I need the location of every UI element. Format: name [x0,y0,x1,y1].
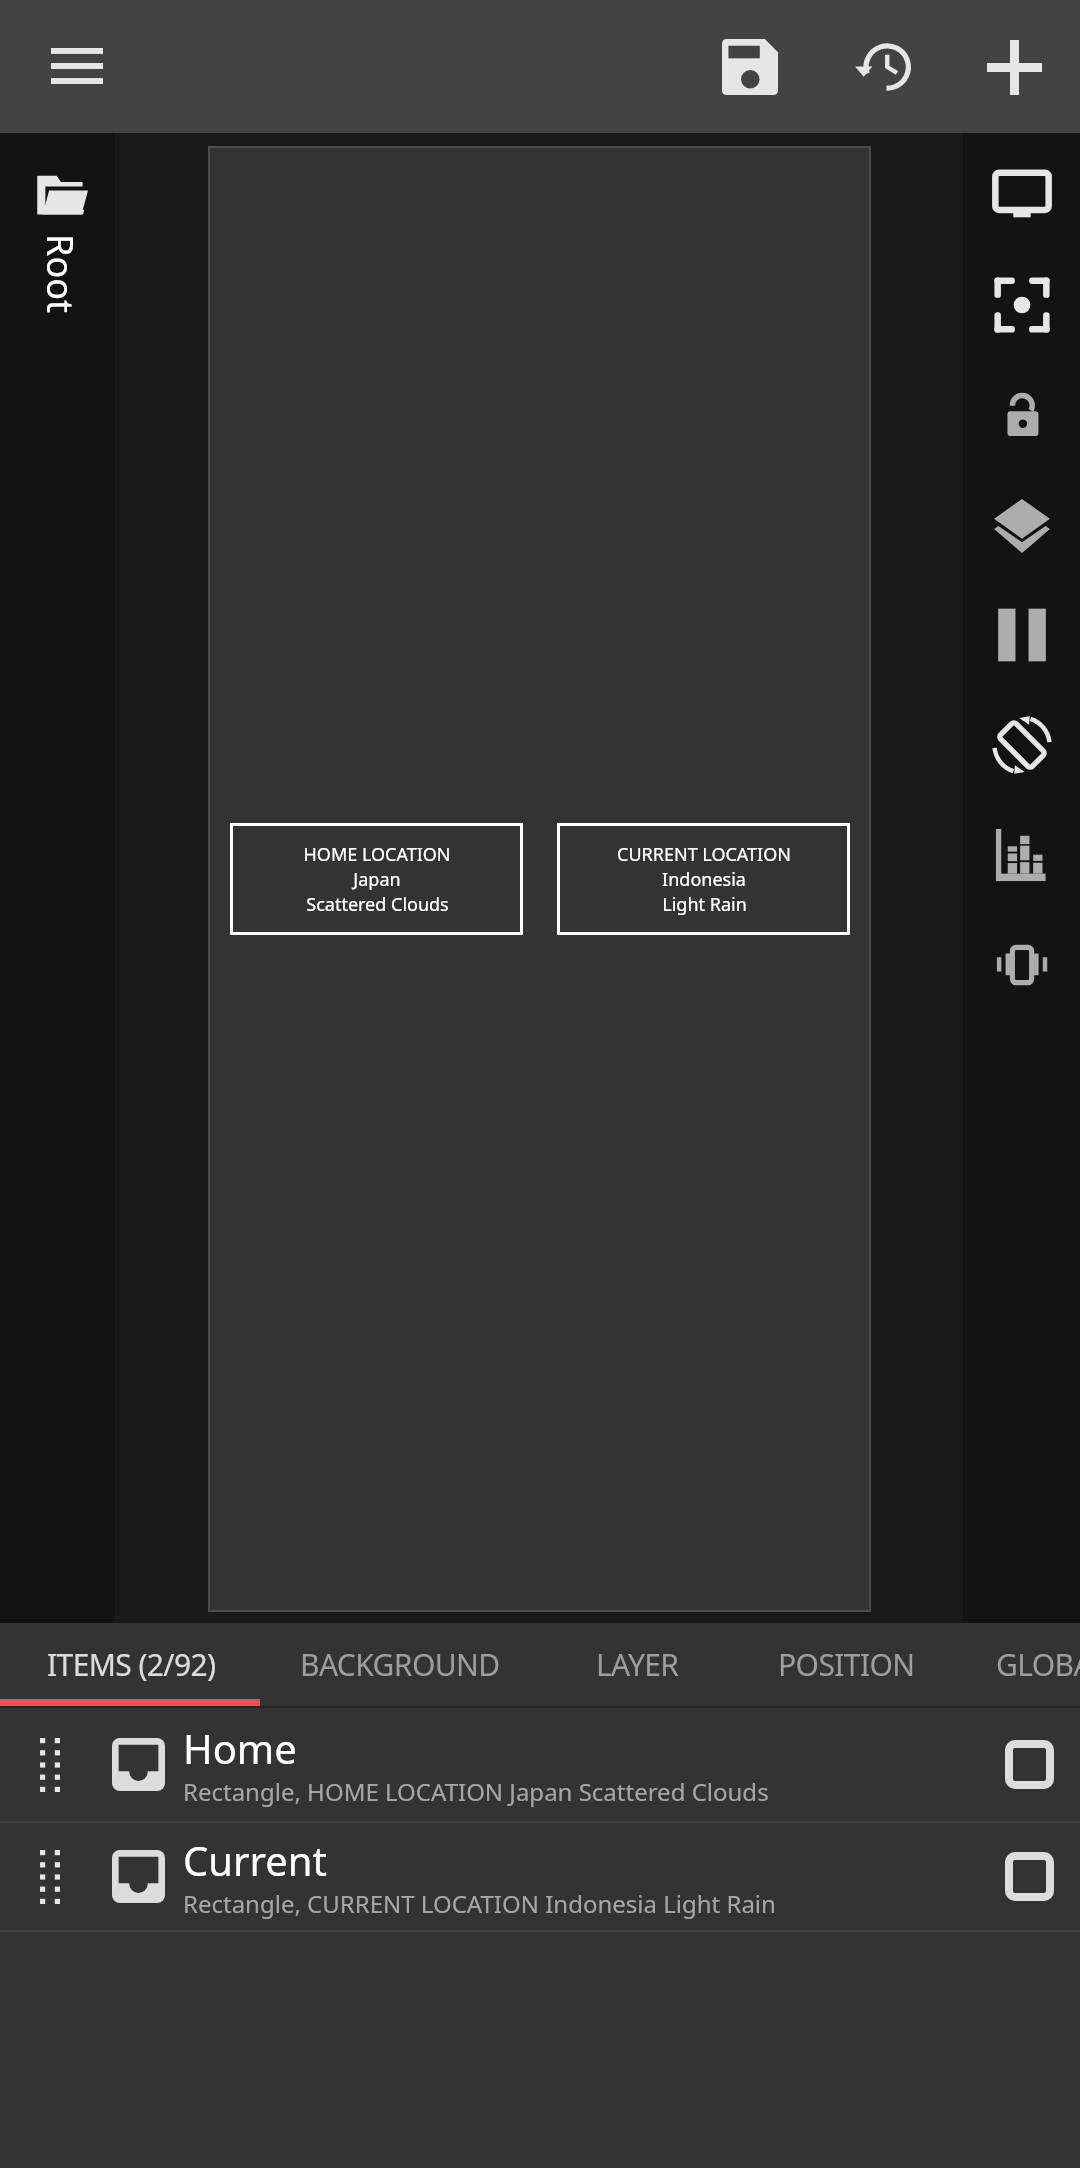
staticText: POSITION [778,1644,915,1685]
staticText: Light Rain [662,892,747,917]
button[interactable]: Stats [963,800,1080,910]
staticText: Scattered Clouds [306,892,449,917]
staticText: ITEMS (2/92) [47,1644,216,1685]
button[interactable]: Layers [963,470,1080,580]
button[interactable]: Lock [963,360,1080,470]
button[interactable]: Rotate [963,690,1080,800]
button[interactable]: Select [992,1727,1067,1802]
staticText: Indonesia [662,867,746,892]
staticText: GLOBAL [996,1644,1080,1685]
button[interactable]: CURRENT LOCATION [557,823,850,935]
button[interactable]: GLOBAL [952,1623,1080,1706]
staticText: Root [36,234,85,313]
button[interactable]: ITEMS (2/92) [0,1623,262,1706]
button[interactable]: Menu [11,0,143,132]
staticText: Current [183,1833,327,1887]
button[interactable]: Vibrate [963,910,1080,1020]
button[interactable]: Center [963,250,1080,360]
staticText: Japan [353,867,401,892]
staticText: LAYER [596,1644,679,1685]
staticText: Home [183,1721,297,1775]
button[interactable]: Home [0,1708,1080,1821]
staticText: BACKGROUND [300,1644,500,1685]
button[interactable]: HOME LOCATION [230,823,523,935]
staticText: Rectangle, CURRENT LOCATION Indonesia Li… [183,1887,776,1920]
button[interactable]: LAYER [538,1623,736,1706]
button[interactable]: BACKGROUND [262,1623,538,1706]
staticText: HOME LOCATION [303,842,451,867]
button[interactable]: Select [992,1839,1067,1914]
button[interactable]: Save [684,1,816,133]
button[interactable]: Current [0,1823,1080,1930]
staticText: Rectangle, HOME LOCATION Japan Scattered… [183,1775,769,1808]
button[interactable]: Pause [963,580,1080,690]
button[interactable]: Preview [963,140,1080,250]
staticText: CURRENT LOCATION [617,842,791,867]
button[interactable]: Add [948,1,1080,133]
button[interactable]: Root folder [0,133,115,363]
button[interactable]: History [816,1,948,133]
button[interactable]: POSITION [742,1623,951,1706]
button[interactable]: Editor canvas [208,146,871,1612]
